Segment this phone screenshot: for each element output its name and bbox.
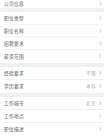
staticText: 工作城市 bbox=[4, 100, 24, 106]
staticText: 公司信息 bbox=[4, 0, 24, 7]
button[interactable]: 职位描述 bbox=[0, 123, 104, 136]
button[interactable]: 薪资范围 bbox=[0, 50, 104, 63]
staticText: 经验要求 bbox=[4, 70, 24, 76]
staticText: 职位类型 bbox=[4, 14, 24, 21]
button[interactable]: 工作城市 bbox=[0, 97, 104, 110]
staticText: 不限 bbox=[86, 70, 96, 76]
button[interactable]: 职位名称 bbox=[0, 25, 104, 38]
staticText: 工作地点 bbox=[4, 113, 24, 119]
button[interactable]: 公司信息 bbox=[0, 0, 104, 8]
staticText: 学历要求 bbox=[4, 83, 24, 89]
button[interactable]: 工作地点 bbox=[0, 110, 104, 123]
button[interactable]: 招聘要求 bbox=[0, 37, 104, 50]
staticText: 职位描述 bbox=[4, 126, 24, 132]
button[interactable]: 学历要求 bbox=[0, 80, 104, 93]
staticText: 薪资范围 bbox=[4, 53, 24, 60]
button[interactable]: 职位类型 bbox=[0, 12, 104, 25]
button[interactable]: 经验要求 bbox=[0, 67, 104, 80]
staticText: 北京 bbox=[86, 100, 96, 106]
staticText: 招聘要求 bbox=[4, 40, 24, 47]
staticText: 职位名称 bbox=[4, 27, 24, 34]
staticText: 本科 bbox=[86, 83, 96, 89]
